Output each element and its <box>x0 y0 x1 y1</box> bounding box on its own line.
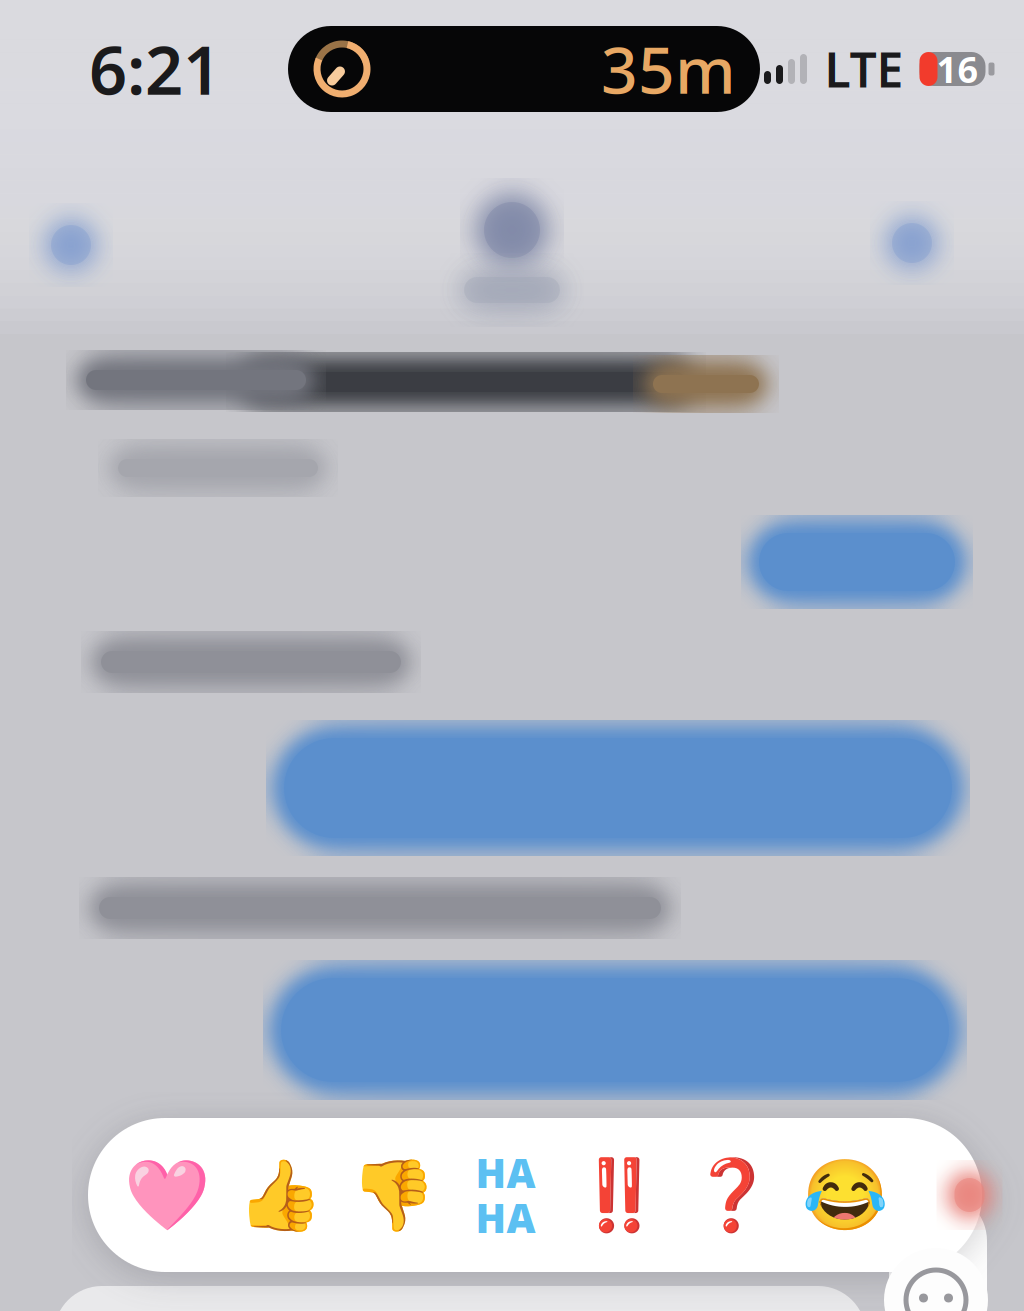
button[interactable]: Love <box>110 1118 223 1272</box>
button[interactable]: More reactions <box>901 1118 1014 1272</box>
staticText: 🩷 <box>123 1155 209 1235</box>
staticText: 👎 <box>349 1155 435 1235</box>
button[interactable]: Like <box>223 1118 336 1272</box>
staticText: 6:21 <box>89 25 221 113</box>
button[interactable]: Exclamation <box>562 1118 675 1272</box>
button[interactable]: Laughing <box>788 1118 901 1272</box>
staticText: 👍 <box>236 1155 322 1235</box>
staticText: 16 <box>936 45 978 93</box>
staticText: ‼️ <box>575 1155 661 1235</box>
staticText: 😂 <box>801 1155 887 1235</box>
staticText: LTE <box>824 37 903 101</box>
button[interactable]: Haha <box>449 1118 562 1272</box>
staticText: HA <box>475 1191 535 1244</box>
button[interactable]: Question <box>675 1118 788 1272</box>
staticText: ❓ <box>688 1155 774 1235</box>
staticText: HA <box>475 1146 535 1199</box>
button[interactable]: Dislike <box>336 1118 449 1272</box>
button[interactable]: Emoji <box>884 1248 988 1311</box>
staticText: 35m <box>601 26 736 111</box>
